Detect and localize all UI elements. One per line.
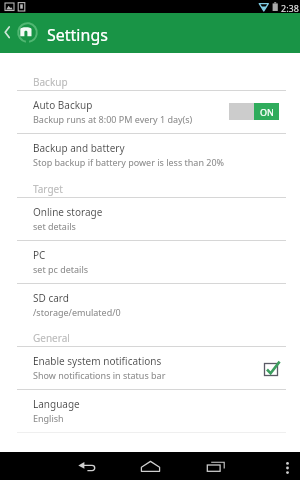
- button[interactable]: Auto Backup on: [229, 103, 279, 120]
- button[interactable]: Auto Backup: [0, 90, 300, 133]
- button[interactable]: PC: [0, 240, 300, 283]
- staticText: Enable system notifications: [33, 354, 162, 368]
- button[interactable]: Back: [70, 452, 102, 480]
- staticText: 2:38: [281, 2, 299, 14]
- button[interactable]: Home: [135, 452, 167, 480]
- button[interactable]: Enable system notifications: [0, 346, 300, 389]
- staticText: Stop backup if battery power is less tha…: [33, 156, 225, 168]
- staticText: Target: [33, 182, 63, 196]
- staticText: English: [33, 412, 64, 424]
- staticText: Auto Backup: [33, 98, 93, 112]
- staticText: ON: [260, 106, 274, 118]
- staticText: Backup: [33, 75, 68, 89]
- staticText: Settings: [47, 24, 108, 46]
- button[interactable]: Recent apps: [200, 452, 232, 480]
- staticText: /storage/emulated/0: [33, 306, 121, 318]
- button[interactable]: More options: [277, 452, 299, 480]
- button[interactable]: Online storage: [0, 197, 300, 240]
- button[interactable]: Navigate up: [0, 13, 16, 53]
- staticText: PC: [33, 248, 46, 262]
- button[interactable]: Enable system notifications: [262, 359, 282, 379]
- staticText: SD card: [33, 291, 69, 305]
- button[interactable]: Backup and battery: [0, 133, 300, 176]
- staticText: Language: [33, 397, 80, 411]
- staticText: Online storage: [33, 205, 103, 219]
- button[interactable]: App logo: [17, 13, 38, 53]
- button[interactable]: Language: [0, 389, 300, 432]
- staticText: set details: [33, 220, 76, 232]
- staticText: General: [33, 331, 70, 345]
- staticText: Backup runs at 8:00 PM every 1 day(s): [33, 113, 193, 125]
- staticText: Show notifications in status bar: [33, 369, 166, 381]
- staticText: set pc details: [33, 263, 89, 275]
- button[interactable]: SD card: [0, 283, 300, 326]
- staticText: Backup and battery: [33, 141, 125, 155]
